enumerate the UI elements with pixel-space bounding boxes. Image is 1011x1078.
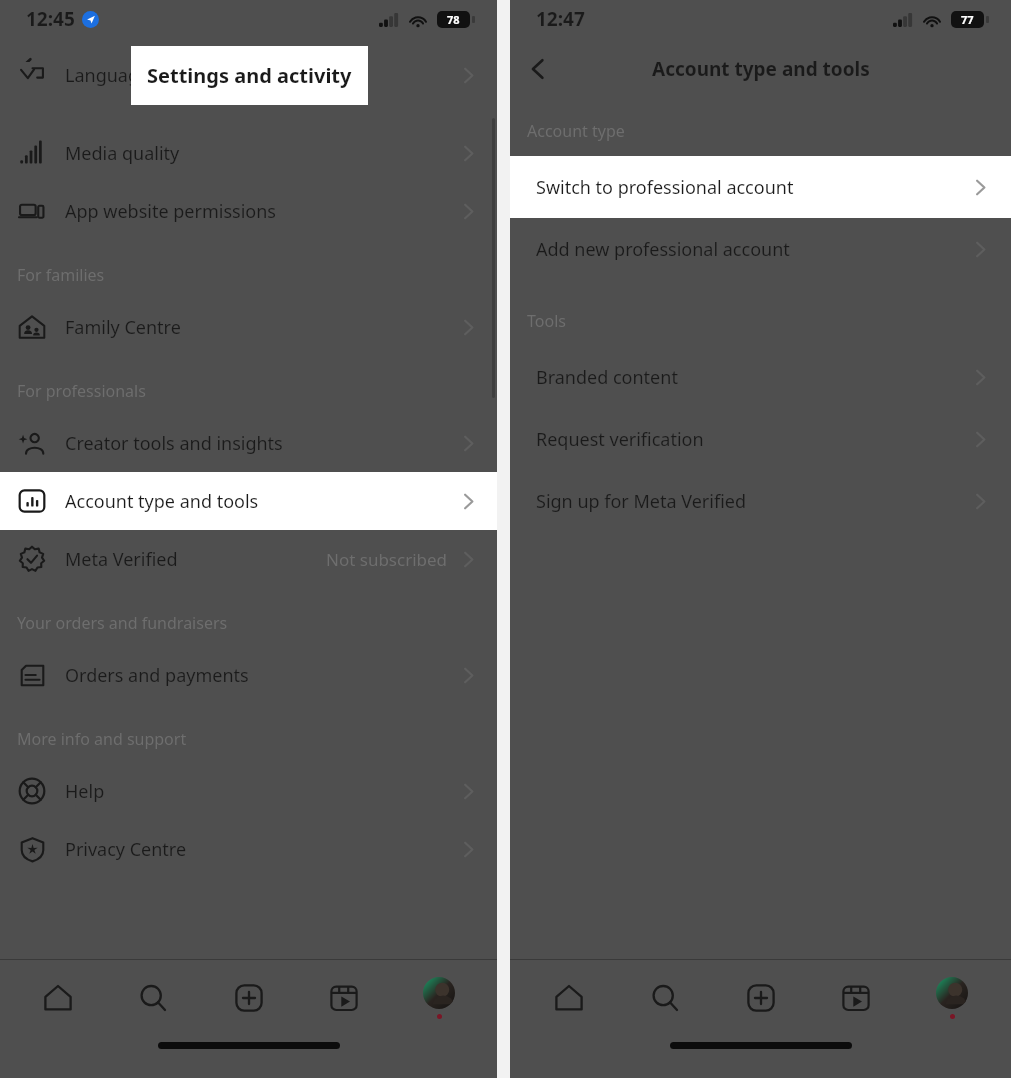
staticText: Switch to professional account [536, 175, 794, 200]
button[interactable]: Family Centre [0, 298, 497, 356]
staticText: Family Centre [65, 315, 181, 340]
staticText: Privacy Centre [65, 837, 187, 862]
staticText: Tools [527, 310, 566, 332]
button[interactable]: Sign up for Meta Verified [510, 470, 1011, 532]
staticText: Orders and payments [65, 663, 249, 688]
button[interactable]: Search [116, 965, 190, 1031]
button[interactable]: Back [4, 46, 48, 90]
staticText: Your orders and fundraisers [17, 612, 228, 634]
staticText: Not subscribed [326, 548, 448, 571]
button[interactable]: Reels [819, 965, 893, 1031]
button[interactable]: Search [628, 965, 702, 1031]
staticText: 77 [961, 12, 974, 27]
button[interactable]: Privacy Centre [0, 820, 497, 878]
staticText: 78 [447, 12, 460, 27]
button[interactable]: Switch to professional account [510, 156, 1011, 218]
button[interactable]: Language [0, 62, 497, 88]
staticText: For professionals [17, 380, 146, 402]
staticText: 12:45 [26, 6, 75, 32]
staticText: Account type [527, 120, 625, 142]
staticText: 12:47 [536, 6, 585, 32]
staticText: App website permissions [65, 199, 276, 224]
staticText: Media quality [65, 141, 180, 166]
staticText: Settings and activity [147, 62, 352, 89]
button[interactable]: Profile [915, 965, 989, 1031]
staticText: For families [17, 264, 105, 286]
button[interactable]: App website permissions [0, 182, 497, 240]
button[interactable]: Orders and payments [0, 646, 497, 704]
button[interactable]: Home [21, 965, 95, 1031]
button[interactable]: Create [212, 965, 286, 1031]
button[interactable]: Request verification [510, 408, 1011, 470]
staticText: Sign up for Meta Verified [536, 489, 746, 514]
button[interactable]: Profile [402, 965, 476, 1031]
button[interactable]: Meta Verified [0, 530, 497, 588]
button[interactable]: Home [532, 965, 606, 1031]
staticText: Language [65, 63, 150, 88]
staticText: Meta Verified [65, 547, 178, 572]
button[interactable]: Branded content [510, 346, 1011, 408]
staticText: Creator tools and insights [65, 431, 283, 456]
staticText: More info and support [17, 728, 187, 750]
staticText: Account type and tools [65, 489, 259, 514]
button[interactable]: Media quality [0, 124, 497, 182]
staticText: Add new professional account [536, 237, 790, 262]
button[interactable]: Help [0, 762, 497, 820]
button[interactable]: Back [516, 47, 560, 91]
staticText: Request verification [536, 427, 704, 452]
button[interactable]: Create [724, 965, 798, 1031]
staticText: Help [65, 779, 105, 804]
staticText: Account type and tools [652, 56, 870, 82]
staticText: Branded content [536, 365, 678, 390]
button[interactable]: Creator tools and insights [0, 414, 497, 472]
button[interactable]: Add new professional account [510, 218, 1011, 280]
button[interactable]: Account type and tools [0, 472, 497, 530]
button[interactable]: Reels [307, 965, 381, 1031]
